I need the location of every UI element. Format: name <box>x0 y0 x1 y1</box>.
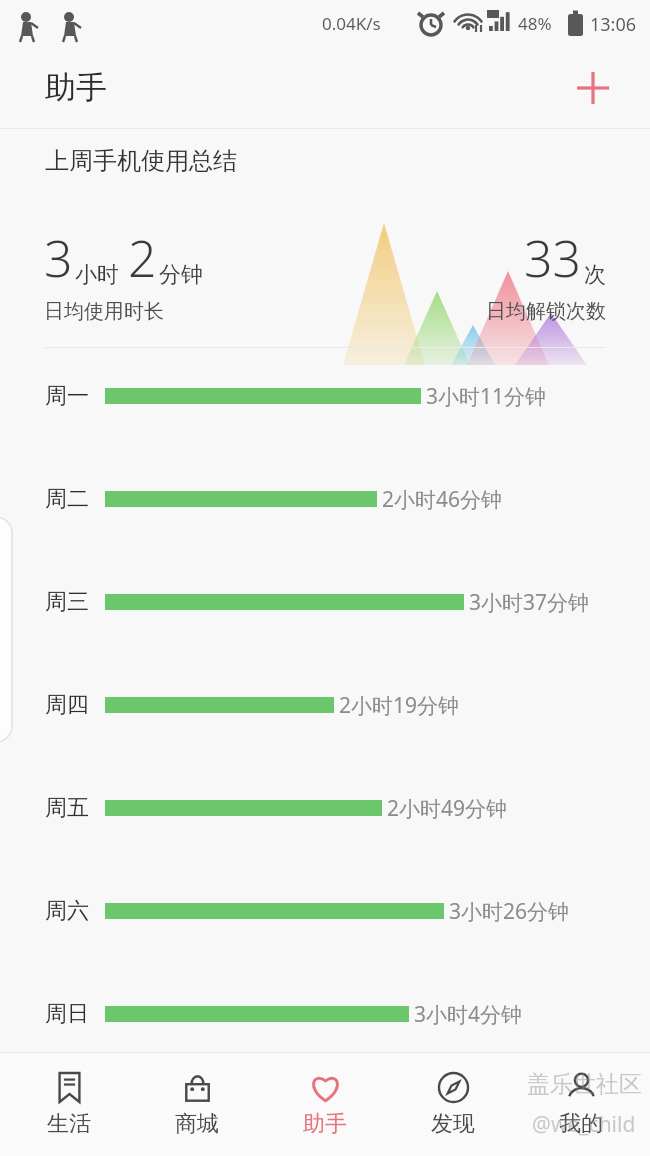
staticText: @we_child <box>532 1110 636 1139</box>
button[interactable]: 周二 <box>0 482 650 516</box>
staticText: 我的 <box>559 1110 603 1138</box>
staticText: 助手 <box>45 68 107 107</box>
staticText: 48% <box>518 12 552 35</box>
staticText: 2 <box>128 224 157 292</box>
staticText: 3小时26分钟 <box>449 897 570 926</box>
staticText: 0.04K/s <box>322 12 381 35</box>
staticText: 周日 <box>45 1000 89 1028</box>
staticText: 33 <box>524 224 582 292</box>
staticText: 3小时4分钟 <box>414 1000 523 1029</box>
staticText: 盖乐世社区 <box>527 1070 642 1099</box>
button[interactable]: 周五 <box>0 791 650 825</box>
staticText: 13:06 <box>590 12 637 37</box>
button[interactable]: 我的 <box>522 1071 640 1138</box>
button[interactable]: 周六 <box>0 894 650 928</box>
button[interactable]: 周三 <box>0 585 650 619</box>
staticText: 3 <box>44 224 73 292</box>
staticText: 助手 <box>303 1110 347 1138</box>
button[interactable]: 周一 <box>0 379 650 413</box>
staticText: 2小时19分钟 <box>339 691 460 720</box>
staticText: 发现 <box>431 1110 475 1138</box>
staticText: 2小时46分钟 <box>382 485 503 514</box>
button[interactable]: 发现 <box>394 1071 512 1138</box>
staticText: 分钟 <box>159 261 203 289</box>
staticText: 周四 <box>45 691 89 719</box>
staticText: 周六 <box>45 897 89 925</box>
button[interactable]: 商城 <box>138 1071 256 1138</box>
staticText: 日均解锁次数 <box>486 299 606 324</box>
staticText: 日均使用时长 <box>44 299 164 324</box>
button[interactable]: 助手 <box>266 1071 384 1138</box>
staticText: 3小时11分钟 <box>426 382 547 411</box>
staticText: 小时 <box>75 261 119 289</box>
button[interactable]: 周四 <box>0 688 650 722</box>
button[interactable]: 周日 <box>0 997 650 1031</box>
staticText: 生活 <box>47 1110 91 1138</box>
staticText: 商城 <box>175 1110 219 1138</box>
staticText: 周五 <box>45 794 89 822</box>
staticText: 上周手机使用总结 <box>45 146 237 176</box>
staticText: 周一 <box>45 382 89 410</box>
button[interactable]: 生活 <box>10 1071 128 1138</box>
staticText: 2小时49分钟 <box>387 794 508 823</box>
staticText: 次 <box>584 261 606 289</box>
staticText: 周三 <box>45 588 89 616</box>
button[interactable]: Add <box>566 61 620 115</box>
staticText: 周二 <box>45 485 89 513</box>
staticText: 3小时37分钟 <box>469 588 590 617</box>
